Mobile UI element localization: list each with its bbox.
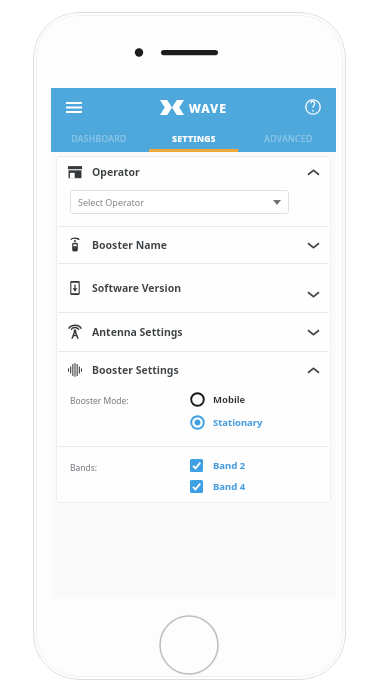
button[interactable]: Band 2 — [190, 459, 246, 472]
staticText: Operator — [92, 165, 308, 179]
staticText: Band 4 — [213, 480, 246, 493]
button[interactable]: SETTINGS — [146, 126, 241, 152]
staticText: Bands: — [70, 462, 190, 474]
staticText: ADVANCED — [264, 133, 313, 145]
staticText: WAVE — [189, 100, 228, 116]
staticText: DASHBOARD — [71, 133, 127, 145]
button[interactable]: Help — [300, 94, 326, 120]
staticText: Booster Mode: — [70, 395, 190, 407]
staticText: SETTINGS — [172, 133, 216, 145]
staticText: Select Operator — [78, 196, 273, 208]
button[interactable]: Mobile — [190, 392, 246, 407]
button[interactable]: Band 4 — [190, 480, 246, 493]
button[interactable]: Booster Name — [56, 227, 331, 263]
button[interactable]: Software Version — [56, 264, 331, 312]
staticText: Stationary — [213, 416, 263, 429]
staticText: Booster Name — [92, 238, 308, 252]
button[interactable]: DASHBOARD — [51, 126, 146, 152]
staticText: Software Version — [92, 281, 308, 295]
staticText: Booster Settings — [92, 363, 308, 377]
button[interactable]: ADVANCED — [241, 126, 336, 152]
button[interactable]: Booster Settings — [56, 352, 331, 388]
button[interactable]: Stationary — [190, 415, 263, 430]
button[interactable]: Antenna Settings — [56, 313, 331, 351]
button[interactable]: Open navigation menu — [61, 94, 87, 120]
staticText: Antenna Settings — [92, 325, 308, 339]
button[interactable]: Operator — [56, 156, 331, 188]
staticText: Band 2 — [213, 459, 246, 472]
button[interactable]: Select Operator — [70, 190, 289, 214]
staticText: Mobile — [213, 393, 246, 406]
